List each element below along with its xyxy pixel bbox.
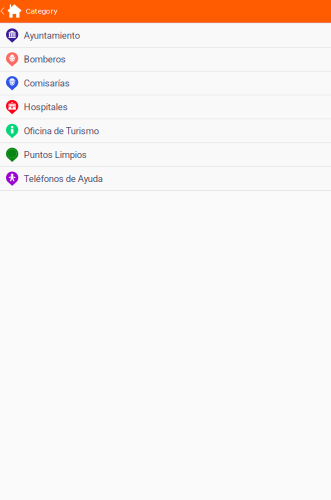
staticText: Teléfonos de Ayuda (24, 173, 103, 184)
button[interactable]: Oficina de Turismo (0, 119, 331, 143)
button[interactable]: Teléfonos de Ayuda (0, 167, 331, 191)
staticText: Category (26, 6, 58, 16)
staticText: Comisarías (24, 78, 70, 89)
staticText: Puntos Limpios (24, 149, 87, 160)
button[interactable]: Puntos Limpios (0, 143, 331, 167)
button[interactable]: Bomberos (0, 48, 331, 72)
button[interactable]: Hospitales (0, 96, 331, 119)
staticText: Oficina de Turismo (24, 125, 99, 136)
staticText: Hospitales (24, 102, 68, 112)
staticText: Ayuntamiento (24, 30, 80, 41)
button[interactable]: Ayuntamiento (0, 24, 331, 48)
staticText: Bomberos (24, 54, 66, 65)
button[interactable]: Comisarías (0, 72, 331, 96)
button[interactable]: Back to Category (0, 0, 58, 22)
